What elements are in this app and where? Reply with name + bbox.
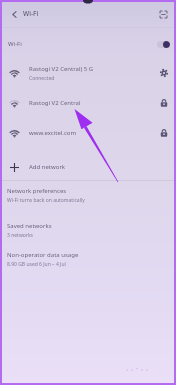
button[interactable]: Add network xyxy=(0,152,176,182)
staticText: Wi-Fi turns back on automatically xyxy=(7,197,85,204)
staticText: 3 networks xyxy=(7,232,33,239)
button[interactable]: Saved networks xyxy=(0,214,176,246)
button[interactable]: Secure network xyxy=(157,126,171,140)
staticText: Network preferences xyxy=(7,187,67,195)
staticText: Wi-Fi xyxy=(23,9,39,18)
staticText: Non-operator data usage xyxy=(7,251,79,259)
button[interactable]: Non-operator data usage xyxy=(0,243,176,275)
staticText: Saved networks xyxy=(7,222,52,230)
staticText: 8.90 GB used 6 Jun – 4 Jul xyxy=(7,261,66,268)
staticText: www.excitel.com xyxy=(29,129,77,137)
staticText: Wi-Fi xyxy=(8,40,22,48)
button[interactable]: Fullscreen xyxy=(156,7,170,21)
staticText: Connected xyxy=(29,75,55,82)
staticText: Add network xyxy=(29,163,66,171)
button[interactable]: Wi-Fi xyxy=(0,28,176,60)
staticText: Rastogi V2 Central xyxy=(29,99,81,107)
button[interactable]: Network settings xyxy=(157,66,171,80)
button[interactable]: Rastogi V2 Central xyxy=(0,88,176,118)
button[interactable]: Secure network xyxy=(157,96,171,110)
button[interactable]: Network preferences xyxy=(0,179,176,211)
button[interactable]: Rastogi V2 Central) 5 G xyxy=(0,58,176,88)
button[interactable]: Back xyxy=(7,7,21,21)
button[interactable]: www.excitel.com xyxy=(0,118,176,148)
staticText: Rastogi V2 Central) 5 G xyxy=(29,65,94,73)
